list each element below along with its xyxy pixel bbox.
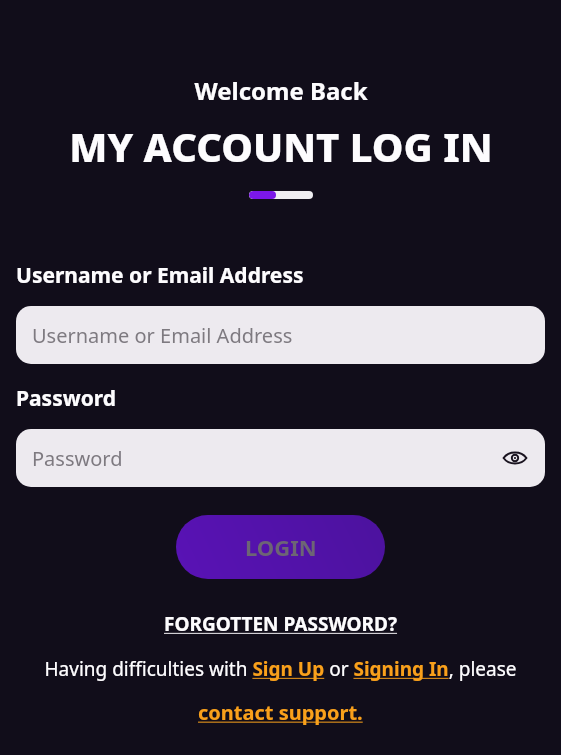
staticText: contact support. <box>198 699 363 726</box>
staticText: Welcome Back <box>194 74 368 107</box>
button[interactable]: LOGIN <box>176 515 385 579</box>
staticText: LOGIN <box>245 532 317 562</box>
button[interactable]: FORGOTTEN PASSWORD? <box>160 609 402 639</box>
staticText: Username or Email Address <box>16 261 304 290</box>
button[interactable]: contact support. <box>194 697 367 728</box>
button[interactable]: Username or Email Address <box>16 306 545 364</box>
button[interactable]: Having difficulties with Sign Up or Sign… <box>0 656 561 682</box>
staticText: MY ACCOUNT LOG IN <box>69 119 493 173</box>
staticText: Having difficulties with Sign Up or Sign… <box>0 656 561 682</box>
staticText: Password <box>32 445 123 472</box>
button[interactable]: Password <box>16 429 545 487</box>
staticText: FORGOTTEN PASSWORD? <box>164 611 398 637</box>
staticText: Username or Email Address <box>32 322 293 349</box>
button[interactable]: Show password <box>501 444 529 472</box>
staticText: Password <box>16 384 117 413</box>
